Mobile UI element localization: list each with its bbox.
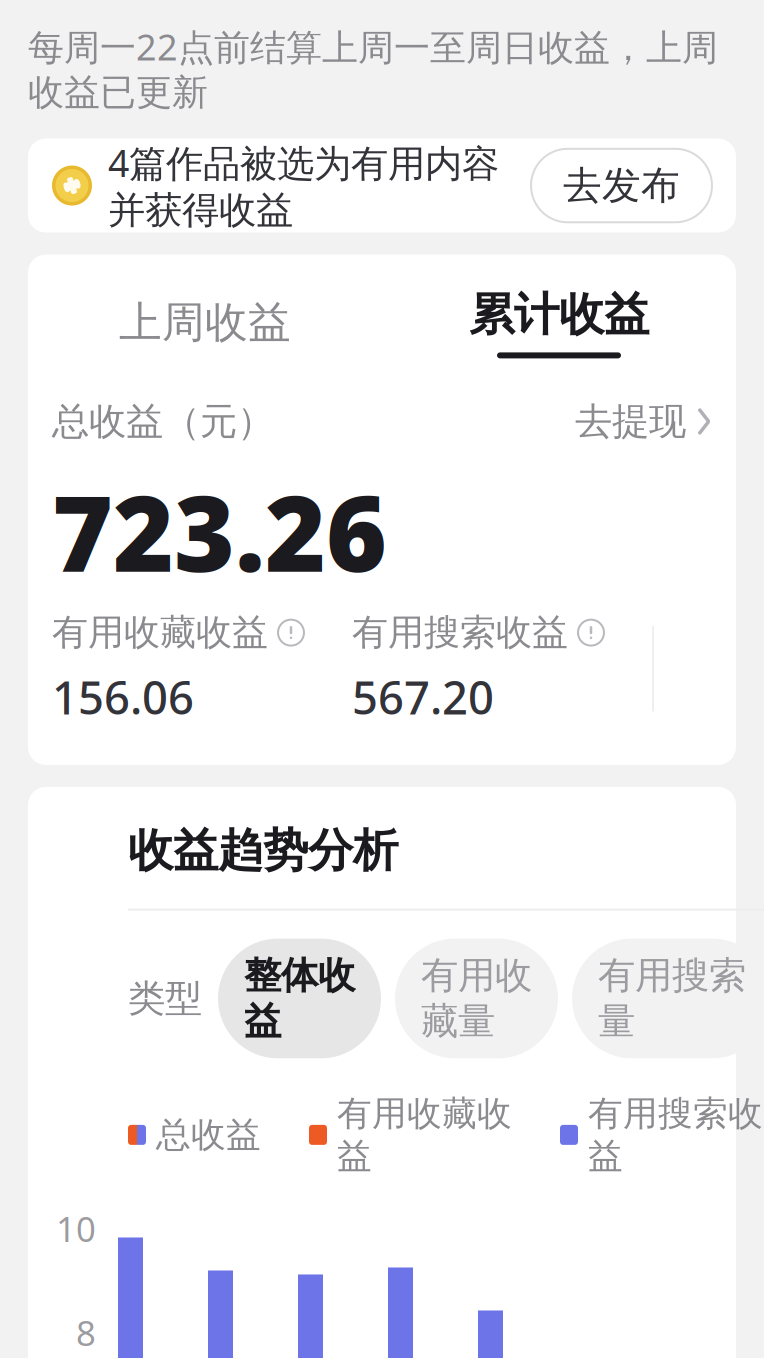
staticText: 上周收益 (119, 296, 291, 349)
staticText: 去发布 (563, 162, 680, 209)
staticText: 156.06 (52, 667, 194, 727)
button[interactable]: 上周收益 (28, 282, 382, 362)
staticText: 每周一22点前结算上周一至周日收益，上周收益已更新 (28, 22, 718, 114)
staticText: 总收益（元） (52, 398, 274, 444)
staticText: 类型 (128, 975, 202, 1021)
staticText: 累计收益 (469, 287, 649, 342)
staticText: 有用收藏收益 (337, 1092, 512, 1177)
staticText: 有用搜索收益 (352, 610, 568, 655)
button[interactable]: 整体收益 (218, 939, 381, 1058)
staticText: 有用收藏收益 (52, 610, 268, 655)
staticText: 723.26 (52, 462, 387, 600)
staticText: 8 (76, 1309, 96, 1355)
staticText: 有用收藏量 (421, 953, 532, 1044)
staticText: 整体收益 (244, 953, 355, 1044)
staticText: 4篇作品被选为有用内容并获得收益 (108, 138, 499, 233)
button[interactable]: 4篇作品被选为有用内容并获得收益 (0, 138, 764, 232)
button[interactable]: 累计收益 (382, 282, 736, 362)
staticText: 总收益 (156, 1114, 261, 1156)
button[interactable]: 去提现 (575, 392, 712, 450)
button[interactable]: 有用搜索量 (572, 939, 764, 1058)
staticText: 去提现 (575, 398, 686, 444)
staticText: 有用搜索收益 (588, 1092, 763, 1177)
staticText: 10 (56, 1205, 96, 1251)
staticText: 567.20 (352, 667, 494, 727)
staticText: 有用搜索量 (598, 953, 746, 1044)
staticText: 收益趋势分析 (128, 823, 398, 879)
button[interactable]: 有用收藏量 (395, 939, 558, 1058)
